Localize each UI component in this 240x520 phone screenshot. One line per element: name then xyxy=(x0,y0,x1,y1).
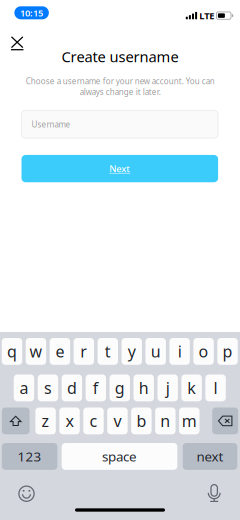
staticText: LTE xyxy=(199,9,214,22)
staticText: Next xyxy=(109,162,130,175)
button[interactable]: y xyxy=(121,338,142,365)
button[interactable]: k xyxy=(181,374,202,401)
button[interactable]: x xyxy=(59,407,80,434)
button[interactable]: Dictation xyxy=(207,484,222,502)
staticText: r xyxy=(80,341,87,362)
button[interactable]: Shift xyxy=(2,407,30,434)
staticText: l xyxy=(214,377,218,398)
button[interactable]: v xyxy=(107,407,128,434)
button[interactable]: Next xyxy=(21,155,218,182)
button[interactable]: r xyxy=(74,338,94,365)
button[interactable]: h xyxy=(133,374,154,401)
staticText: o xyxy=(199,341,209,362)
button[interactable]: u xyxy=(145,338,166,365)
staticText: 123 xyxy=(18,447,42,465)
button[interactable]: g xyxy=(110,374,130,401)
staticText: n xyxy=(160,410,170,431)
button[interactable]: next xyxy=(183,443,237,470)
staticText: b xyxy=(136,410,146,431)
staticText: g xyxy=(115,377,125,398)
staticText: q xyxy=(7,341,17,362)
staticText: m xyxy=(182,410,197,431)
button[interactable]: e xyxy=(50,338,70,365)
button[interactable]: 123 xyxy=(2,443,57,470)
button[interactable]: a xyxy=(14,374,34,401)
button[interactable]: b xyxy=(131,407,152,434)
staticText: k xyxy=(187,377,196,398)
staticText: w xyxy=(29,341,42,362)
button[interactable]: Close xyxy=(3,31,31,55)
staticText: a xyxy=(19,377,28,398)
staticText: Create username xyxy=(61,47,178,66)
staticText: p xyxy=(222,341,232,362)
button[interactable]: f xyxy=(86,374,106,401)
staticText: h xyxy=(139,377,149,398)
button[interactable]: j xyxy=(157,374,178,401)
staticText: f xyxy=(93,377,99,398)
button[interactable]: space xyxy=(62,443,177,470)
staticText: z xyxy=(42,410,50,431)
staticText: 10:15 xyxy=(20,7,43,19)
button[interactable]: w xyxy=(26,338,46,365)
button[interactable]: o xyxy=(193,338,214,365)
button[interactable]: l xyxy=(205,374,226,401)
staticText: d xyxy=(67,377,77,398)
staticText: x xyxy=(65,410,73,431)
button[interactable]: c xyxy=(83,407,104,434)
button[interactable]: s xyxy=(38,374,58,401)
button[interactable]: Delete xyxy=(212,407,238,434)
staticText: t xyxy=(105,341,111,362)
staticText: space xyxy=(102,447,137,465)
button[interactable]: d xyxy=(62,374,82,401)
staticText: i xyxy=(178,341,182,362)
staticText: c xyxy=(89,410,97,431)
button[interactable]: q xyxy=(2,338,22,365)
staticText: Username xyxy=(31,119,70,130)
button[interactable]: p xyxy=(217,338,238,365)
staticText: next xyxy=(196,447,223,465)
staticText: e xyxy=(55,341,64,362)
button[interactable]: Emoji xyxy=(18,485,35,502)
button[interactable]: z xyxy=(35,407,56,434)
staticText: u xyxy=(151,341,161,362)
button[interactable]: n xyxy=(155,407,176,434)
button[interactable]: i xyxy=(169,338,190,365)
button[interactable]: m xyxy=(179,407,199,434)
button[interactable]: t xyxy=(98,338,118,365)
staticText: y xyxy=(128,341,136,362)
staticText: v xyxy=(113,410,121,431)
staticText: Choose a username for your new account. … xyxy=(25,76,214,97)
staticText: s xyxy=(44,377,52,398)
staticText: j xyxy=(166,377,170,398)
